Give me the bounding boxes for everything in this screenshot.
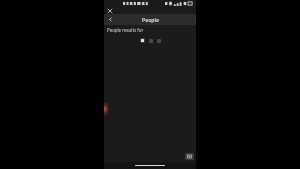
button[interactable]: Screenshot xyxy=(185,153,194,160)
staticText: People results for xyxy=(107,27,144,33)
button[interactable] xyxy=(149,39,153,43)
staticText: People xyxy=(142,16,159,23)
button[interactable] xyxy=(140,38,145,43)
button[interactable]: Back xyxy=(105,14,116,25)
button[interactable]: Close xyxy=(106,7,113,14)
button[interactable] xyxy=(157,39,161,43)
